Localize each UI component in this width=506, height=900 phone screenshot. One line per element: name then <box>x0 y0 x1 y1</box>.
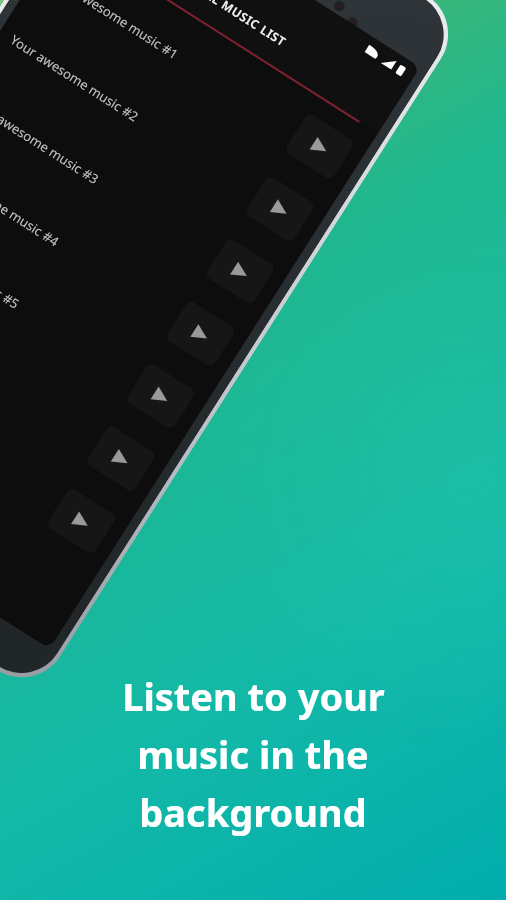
button[interactable]: Your awesome music #4 <box>0 124 256 388</box>
staticText: Listen to your <box>122 670 385 722</box>
staticText: music in the <box>137 728 369 780</box>
button[interactable]: Play track 6 <box>85 424 157 493</box>
button[interactable]: Your awesome music #5 <box>0 187 216 450</box>
staticText: Your awesome music #1 <box>47 0 301 139</box>
button[interactable]: Play track 7 <box>45 487 117 555</box>
button[interactable]: Play track 2 <box>244 174 316 243</box>
staticText: Your awesome music #6 <box>0 280 102 451</box>
staticText: Your awesome music #2 <box>7 30 261 201</box>
staticText: Your awesome music #5 <box>0 218 142 389</box>
button[interactable]: Play track 5 <box>125 362 197 431</box>
button[interactable]: Your awesome music #7 <box>0 311 137 575</box>
staticText: background <box>139 786 367 838</box>
button[interactable]: Your awesome music #1 <box>20 0 375 200</box>
staticText: Your awesome music #4 <box>0 155 182 326</box>
button[interactable]: Your awesome music #3 <box>0 62 296 325</box>
staticText: LOCAL MUSIC LIST <box>180 0 289 49</box>
button[interactable]: Your awesome music #6 <box>0 249 176 512</box>
button[interactable]: Play track 4 <box>165 299 236 368</box>
staticText: Your awesome music #3 <box>0 93 222 264</box>
button[interactable]: Play track 3 <box>204 237 276 306</box>
button[interactable]: Play track 1 <box>284 112 356 181</box>
button[interactable]: Your awesome music #2 <box>0 0 335 263</box>
